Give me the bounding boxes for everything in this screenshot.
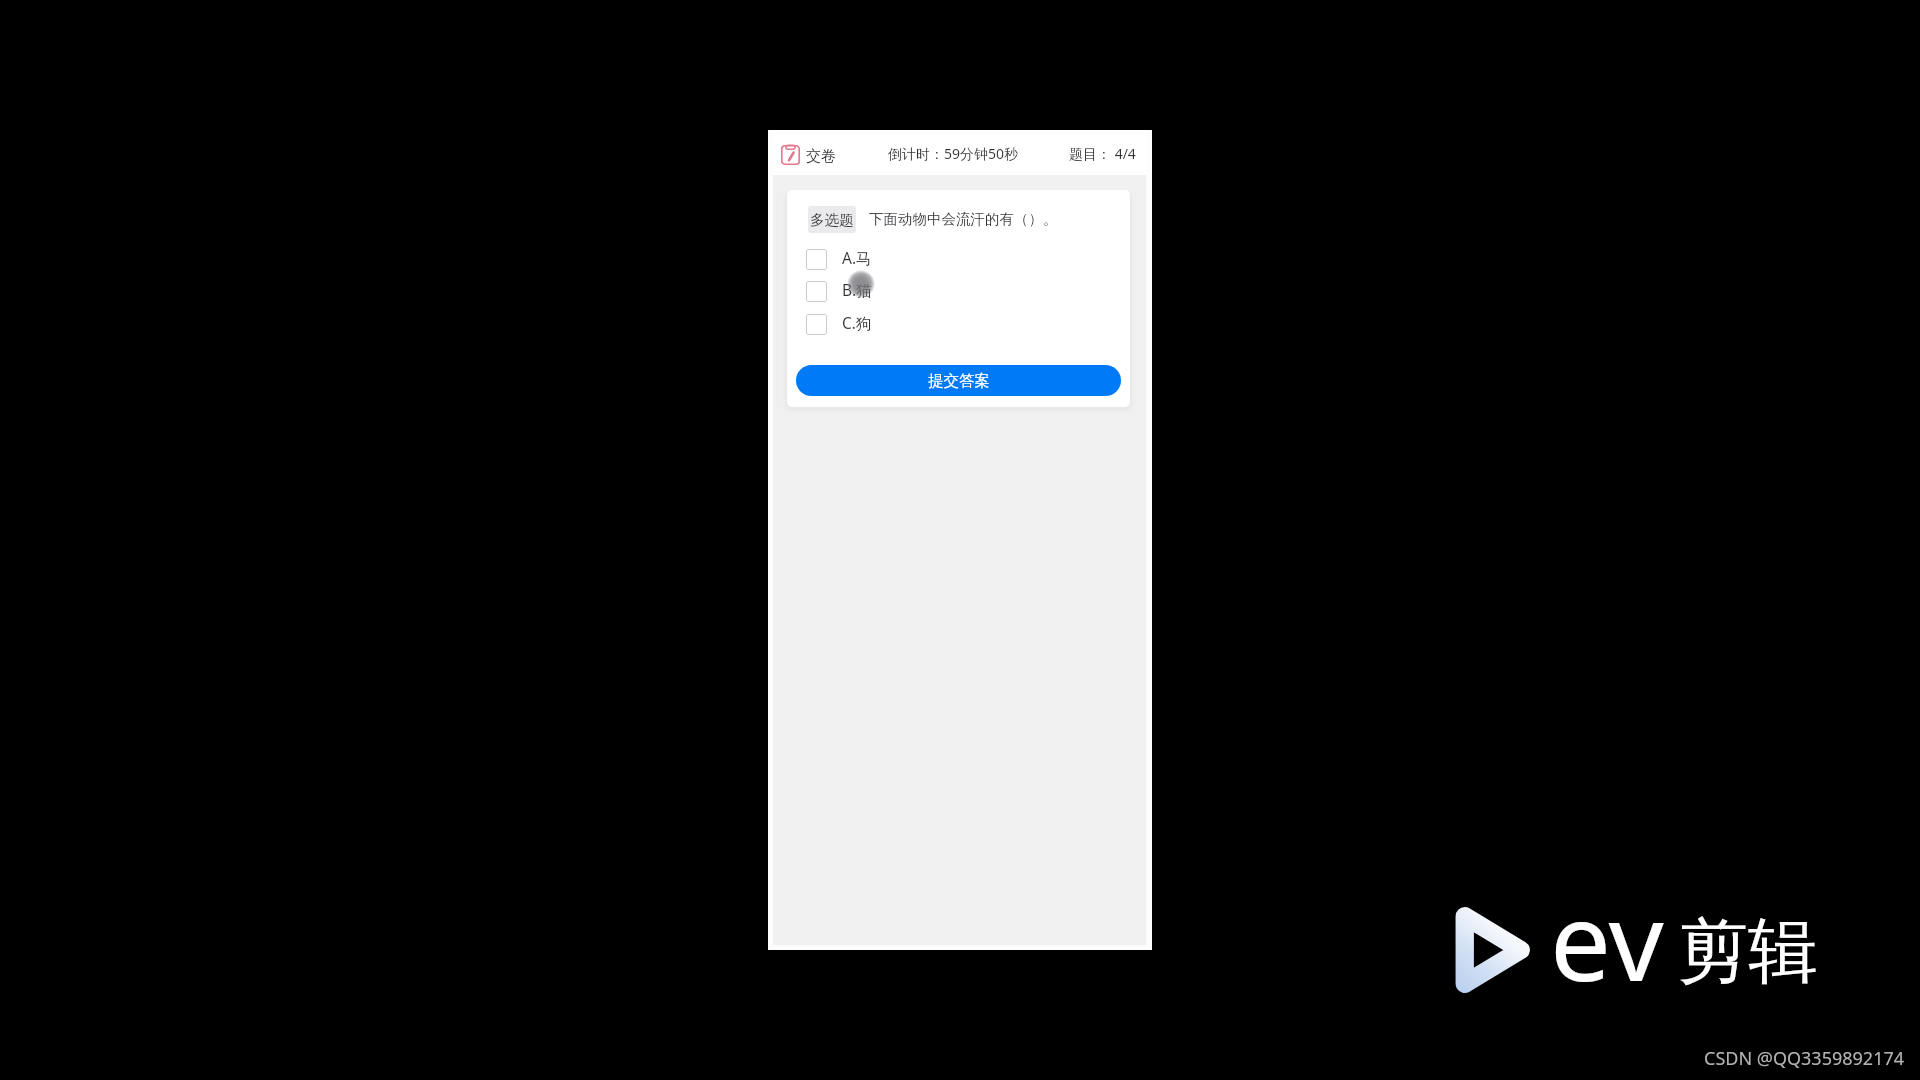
staticText: 倒计时：59分钟50秒 [888,144,1019,163]
staticText: A.马 [842,247,872,268]
staticText: 多选题 [810,211,854,229]
staticText: 剪辑 [1678,908,1818,996]
staticText: C.狗 [842,312,872,333]
staticText: 提交答案 [928,371,990,391]
staticText: CSDN @QQ3359892174 [1704,1046,1905,1071]
staticText: 下面动物中会流汗的有（）。 [869,210,1058,228]
staticText: 题目： 4/4 [1069,144,1136,163]
staticText: 交卷 [806,147,836,166]
button[interactable]: C.狗 [787,309,1130,340]
button[interactable]: B.猫 [787,276,1130,307]
button[interactable]: 提交答案 [796,365,1121,396]
other: 交卷 Submit exam [781,145,800,165]
button[interactable]: 交卷 Submit exam [777,141,840,172]
button[interactable]: A.马 [787,244,1130,275]
staticText: B.猫 [842,279,872,300]
staticText: ev [1550,866,1664,1013]
